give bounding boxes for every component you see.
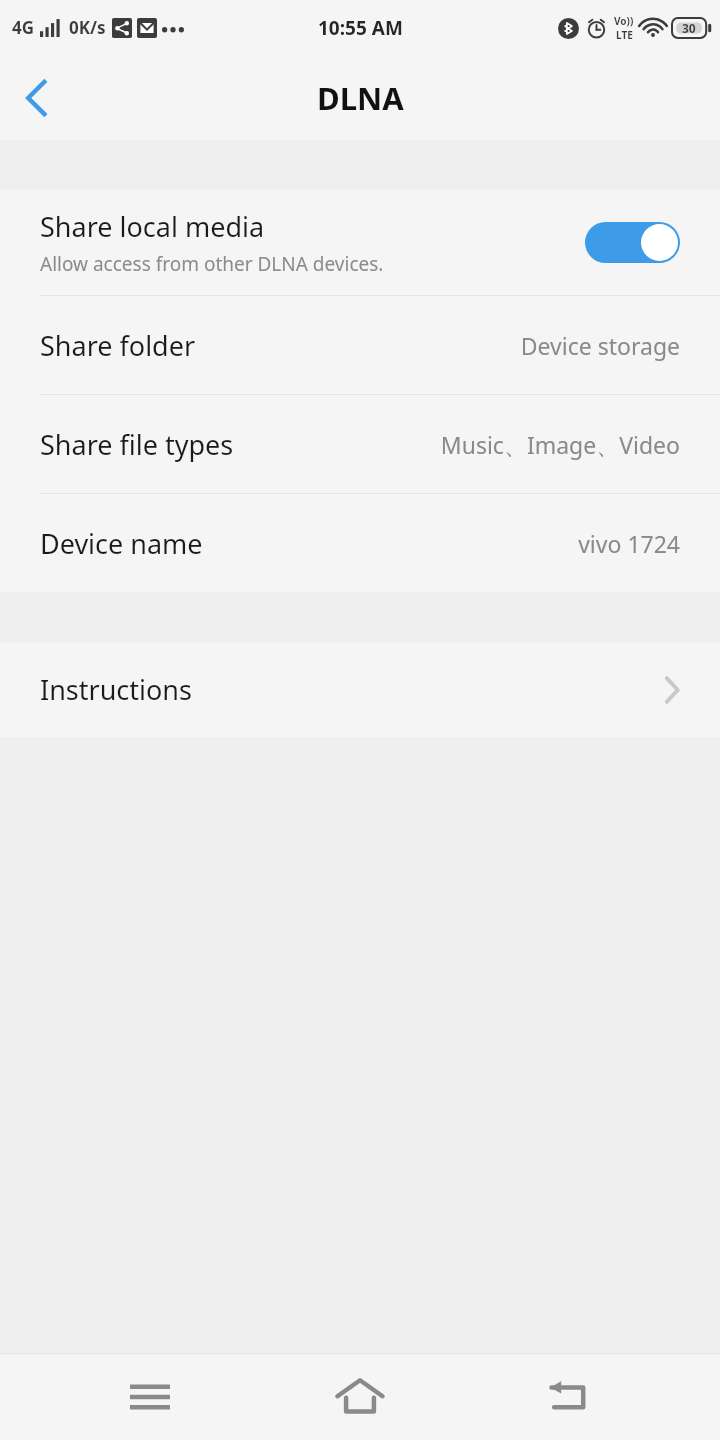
staticText: vivo 1724 [578, 528, 680, 559]
staticText: 30 [682, 20, 696, 36]
button[interactable]: Share local media [0, 190, 720, 295]
button[interactable]: Recent apps [90, 1354, 210, 1440]
button[interactable]: Share folder [0, 296, 720, 394]
staticText: 4G [12, 16, 35, 39]
staticText: Instructions [40, 671, 192, 708]
staticText: Music、Image、Video [440, 429, 680, 460]
staticText: Device name [40, 525, 203, 562]
staticText: Share file types [40, 426, 234, 463]
button[interactable]: Device name [0, 494, 720, 592]
staticText: Share local media [40, 208, 265, 245]
staticText: Share folder [40, 327, 196, 364]
staticText: DLNA [317, 77, 404, 119]
button[interactable]: Instructions [0, 642, 720, 737]
staticText: Device storage [520, 330, 680, 361]
staticText: 10:55 AM [318, 15, 403, 41]
button[interactable]: Share local media toggle [585, 222, 680, 263]
staticText: Allow access from other DLNA devices. [40, 251, 384, 277]
button[interactable]: Share file types [0, 395, 720, 493]
staticText: LTE [616, 28, 633, 42]
button[interactable]: Back [0, 62, 72, 134]
button[interactable]: Back [510, 1354, 630, 1440]
staticText: 0K/s [69, 16, 106, 39]
button[interactable]: Home [300, 1354, 420, 1440]
staticText: Vo)) [614, 14, 634, 28]
